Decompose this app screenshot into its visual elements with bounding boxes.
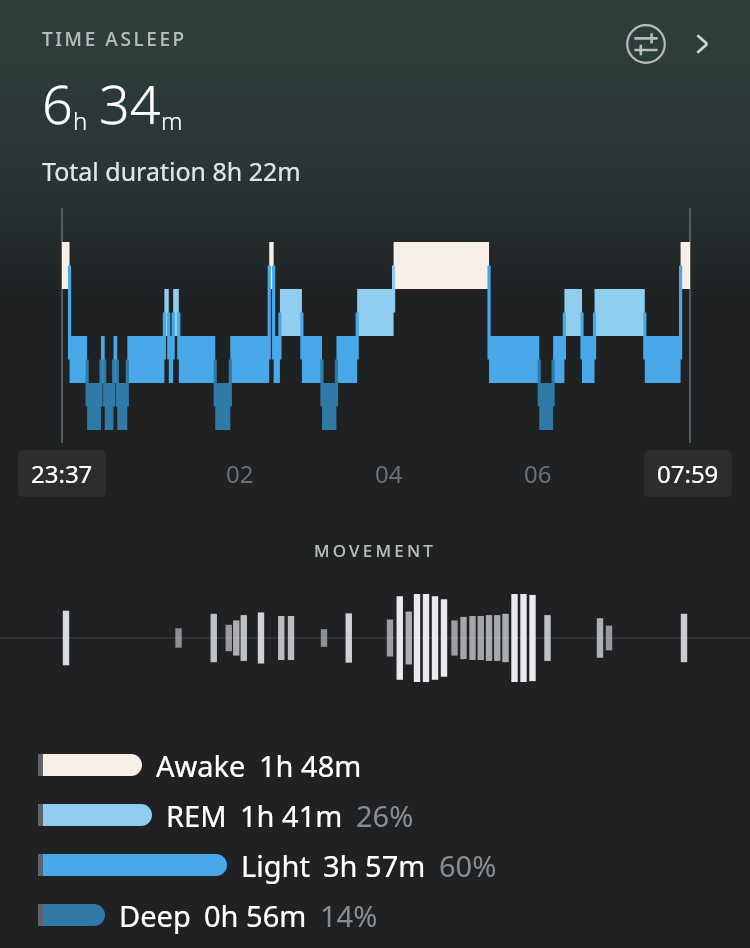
staticText: 23:37 — [31, 457, 93, 490]
staticText: MOVEMENT — [0, 539, 750, 562]
staticText: 1h 48m — [259, 746, 362, 785]
staticText: REM — [166, 796, 227, 835]
staticText: 3h 57m — [323, 846, 426, 885]
staticText: 26% — [356, 796, 414, 835]
staticText: Light — [241, 846, 310, 885]
staticText: 07:59 — [657, 457, 719, 490]
staticText: 34 — [99, 66, 161, 140]
staticText: m — [161, 104, 183, 137]
staticText: 14% — [320, 896, 378, 935]
button[interactable]: REM — [38, 790, 750, 840]
staticText: TIME ASLEEP — [42, 26, 187, 52]
staticText: 60% — [439, 846, 497, 885]
staticText: Awake — [156, 746, 246, 785]
button[interactable]: Deep — [38, 890, 750, 940]
button[interactable]: Open sleep details — [680, 22, 724, 66]
staticText: 02 — [226, 457, 254, 490]
staticText: 06 — [524, 457, 552, 490]
button[interactable]: Awake — [38, 740, 750, 790]
staticText: 04 — [375, 457, 403, 490]
button[interactable]: Sleep settings — [622, 20, 670, 68]
button[interactable]: Light — [38, 840, 750, 890]
staticText: 0h 56m — [204, 896, 307, 935]
staticText: Deep — [119, 896, 191, 935]
staticText: 1h 41m — [240, 796, 343, 835]
staticText: Total duration 8h 22m — [42, 154, 301, 188]
staticText: h — [73, 104, 88, 137]
staticText: 6 — [42, 66, 73, 140]
